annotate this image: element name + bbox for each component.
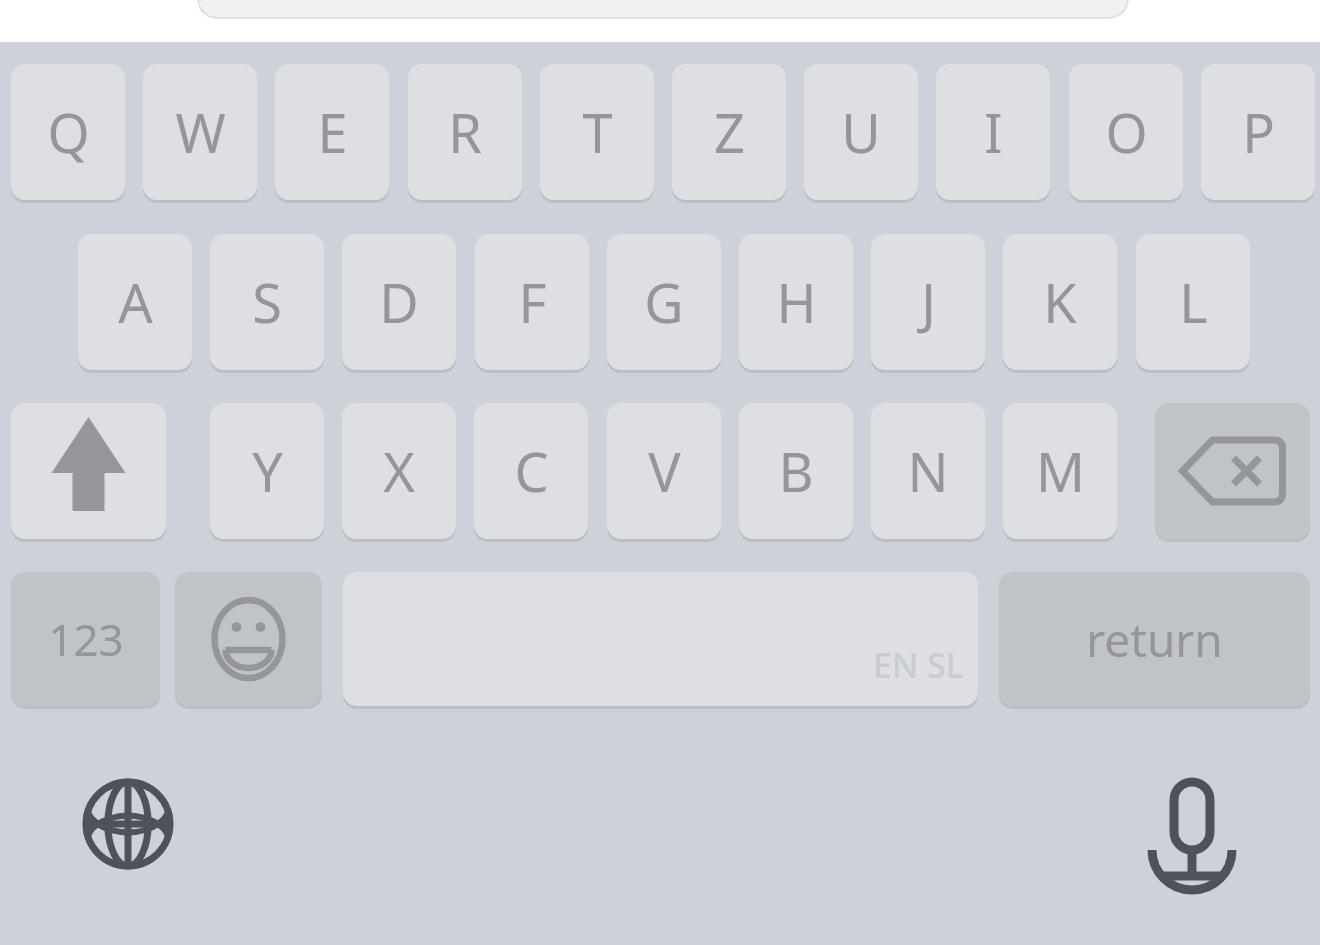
- staticText: J: [921, 265, 936, 339]
- button[interactable]: R: [408, 64, 522, 200]
- button[interactable]: T: [540, 64, 654, 200]
- button[interactable]: M: [1003, 403, 1117, 539]
- staticText: 123: [48, 609, 124, 669]
- button[interactable]: Change keyboard language: [68, 764, 188, 884]
- button[interactable]: N: [871, 403, 985, 539]
- staticText: Y: [252, 434, 283, 508]
- button[interactable]: W: [143, 64, 257, 200]
- staticText: H: [776, 265, 817, 339]
- button[interactable]: D: [342, 234, 456, 370]
- staticText: U: [841, 95, 881, 169]
- staticText: A: [118, 265, 153, 339]
- button[interactable]: E: [275, 64, 389, 200]
- button[interactable]: Shift: [11, 403, 166, 539]
- staticText: Q: [47, 95, 90, 169]
- staticText: D: [379, 265, 419, 339]
- button[interactable]: J: [871, 234, 985, 370]
- button[interactable]: A: [78, 234, 192, 370]
- staticText: return: [1086, 608, 1223, 671]
- button[interactable]: I: [936, 64, 1050, 200]
- button[interactable]: return: [999, 572, 1310, 706]
- staticText: EN SL: [873, 642, 965, 688]
- button[interactable]: B: [739, 403, 853, 539]
- staticText: F: [518, 265, 547, 339]
- button[interactable]: C: [474, 403, 588, 539]
- button[interactable]: X: [342, 403, 456, 539]
- button[interactable]: U: [804, 64, 918, 200]
- button[interactable]: Emoji: [175, 572, 322, 706]
- button[interactable]: 123: [11, 572, 160, 706]
- button[interactable]: Z: [672, 64, 786, 200]
- staticText: S: [252, 265, 282, 339]
- staticText: G: [644, 265, 684, 339]
- staticText: Z: [714, 95, 745, 169]
- button[interactable]: V: [607, 403, 721, 539]
- staticText: V: [648, 434, 681, 508]
- button[interactable]: L: [1136, 234, 1250, 370]
- staticText: P: [1242, 95, 1275, 169]
- staticText: K: [1043, 265, 1077, 339]
- staticText: B: [778, 434, 814, 508]
- staticText: L: [1179, 265, 1208, 339]
- button[interactable]: G: [607, 234, 721, 370]
- staticText: O: [1105, 95, 1148, 169]
- staticText: W: [175, 95, 226, 169]
- staticText: I: [984, 95, 1003, 169]
- button[interactable]: F: [475, 234, 589, 370]
- button[interactable]: P: [1201, 64, 1315, 200]
- button[interactable]: Y: [210, 403, 324, 539]
- button[interactable]: Backspace: [1155, 403, 1310, 539]
- button[interactable]: Voice input: [1132, 764, 1252, 884]
- staticText: M: [1036, 434, 1085, 508]
- button[interactable]: O: [1069, 64, 1183, 200]
- staticText: C: [514, 434, 549, 508]
- staticText: N: [907, 434, 949, 508]
- button[interactable]: K: [1003, 234, 1117, 370]
- button[interactable]: S: [210, 234, 324, 370]
- staticText: E: [317, 95, 348, 169]
- staticText: R: [448, 95, 482, 169]
- staticText: T: [582, 95, 613, 169]
- staticText: X: [383, 434, 415, 508]
- button[interactable]: Q: [11, 64, 125, 200]
- button[interactable]: H: [739, 234, 853, 370]
